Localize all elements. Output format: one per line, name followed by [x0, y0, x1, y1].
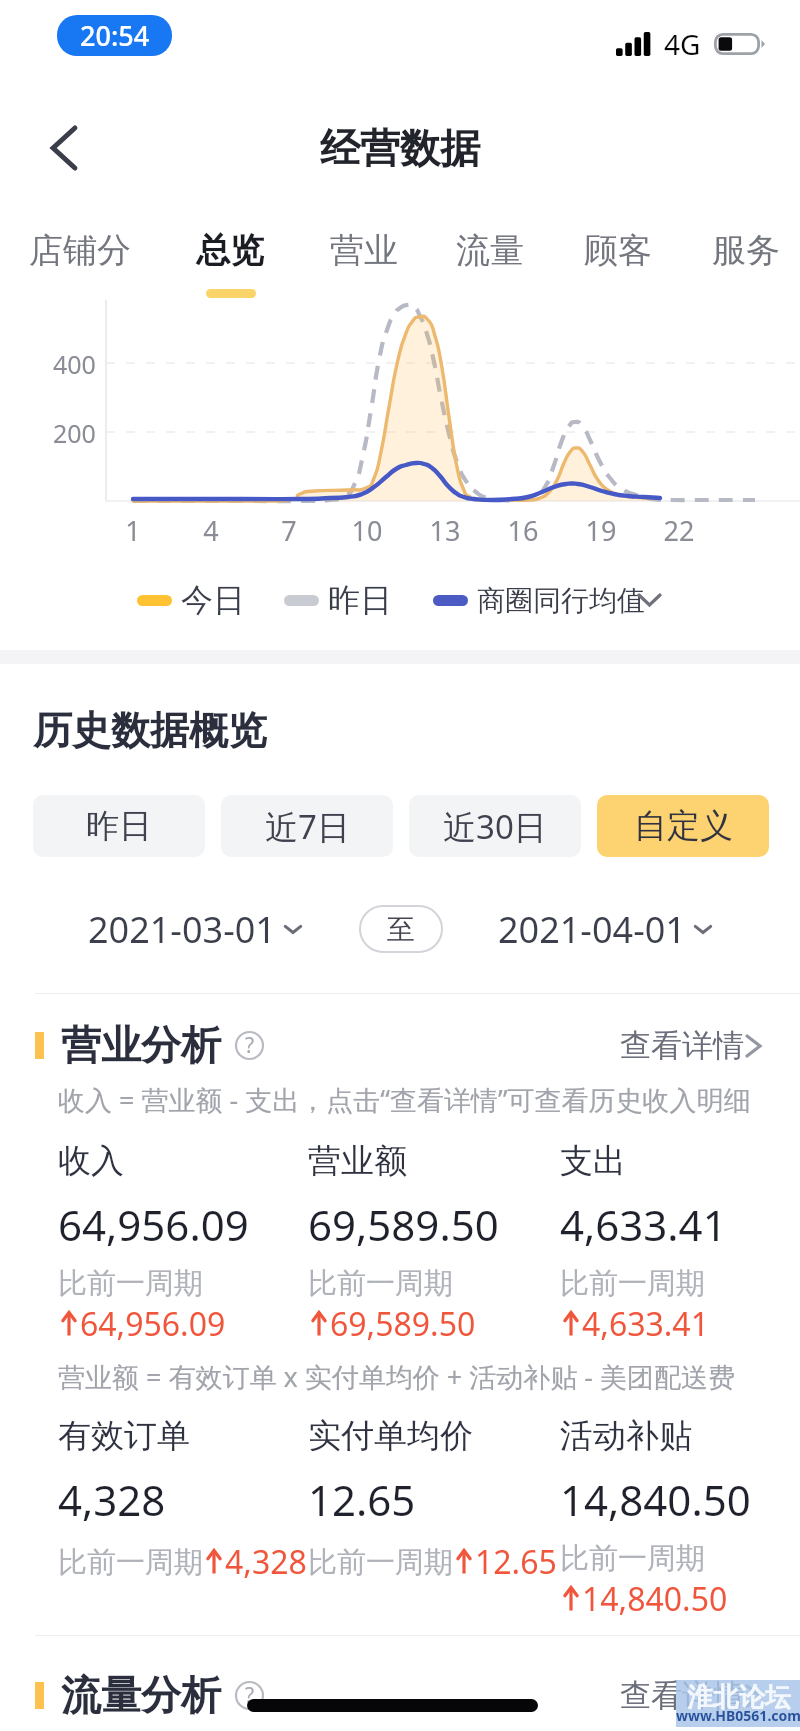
- staticText: 比前一周期: [308, 1544, 453, 1581]
- staticText: 14,840.50: [582, 1577, 728, 1621]
- staticText: 收入 = 营业额 - 支出，点击“查看详情”可查看历史收入明细: [58, 1081, 751, 1118]
- staticText: 4,328: [225, 1540, 307, 1584]
- staticText: 64,956.09: [80, 1302, 226, 1346]
- staticText: 查看详情: [620, 1676, 744, 1715]
- staticText: 4,328: [58, 1471, 166, 1528]
- staticText: 4,633.41: [582, 1302, 709, 1346]
- staticText: 支出: [560, 1140, 626, 1182]
- staticText: 4: [193, 512, 229, 549]
- staticText: 收入: [58, 1140, 124, 1182]
- staticText: 比前一周期: [58, 1265, 203, 1302]
- staticText: www.HB0561.com: [676, 1706, 800, 1725]
- staticText: 12.65: [308, 1471, 416, 1528]
- staticText: 近7日: [265, 804, 350, 849]
- staticText: 营业额 = 有效订单 x 实付单均价 + 活动补贴 - 美团配送费: [58, 1358, 736, 1395]
- button[interactable]: 昨日: [284, 550, 392, 650]
- staticText: 昨日: [328, 580, 392, 620]
- staticText: 13: [427, 512, 463, 549]
- staticText: 16: [505, 512, 541, 549]
- staticText: 商圈同行均值: [477, 583, 645, 618]
- staticText: 昨日: [86, 805, 152, 847]
- staticText: 近30日: [443, 804, 547, 849]
- button[interactable]: 近7日: [221, 795, 393, 857]
- staticText: 2021-04-01: [498, 905, 686, 954]
- staticText: 14,840.50: [560, 1471, 751, 1528]
- staticText: 69,589.50: [330, 1302, 476, 1346]
- button[interactable]: 总览: [155, 200, 305, 272]
- button[interactable]: 流量: [415, 200, 565, 272]
- staticText: 服务: [712, 229, 780, 272]
- staticText: 营业: [330, 229, 398, 272]
- staticText: 营业额: [308, 1140, 407, 1182]
- staticText: 200: [53, 416, 96, 450]
- staticText: 淮北论坛: [687, 1681, 791, 1714]
- staticText: 实付单均价: [308, 1415, 473, 1457]
- staticText: 4,633.41: [560, 1196, 727, 1253]
- staticText: 64,956.09: [58, 1196, 249, 1253]
- staticText: 12.65: [475, 1540, 557, 1584]
- staticText: 4G: [664, 25, 701, 63]
- button[interactable]: Help: [234, 1680, 265, 1711]
- button[interactable]: 2021-03-01: [33, 899, 359, 959]
- button[interactable]: 营业: [289, 200, 439, 272]
- staticText: 流量: [456, 229, 524, 272]
- button[interactable]: 服务: [671, 200, 800, 272]
- staticText: ?: [245, 1681, 255, 1710]
- button[interactable]: 查看详情: [620, 1676, 762, 1715]
- staticText: 经营数据: [320, 123, 480, 173]
- staticText: 历史数据概览: [33, 706, 267, 755]
- button[interactable]: 昨日: [33, 795, 205, 857]
- staticText: 10: [349, 512, 385, 549]
- button[interactable]: 顾客: [543, 200, 693, 272]
- button[interactable]: 店铺分: [5, 200, 155, 272]
- staticText: 店铺分: [29, 229, 131, 272]
- button[interactable]: 自定义: [597, 795, 769, 857]
- staticText: 活动补贴: [560, 1415, 692, 1457]
- button[interactable]: 今日: [137, 550, 245, 650]
- staticText: 1: [115, 512, 151, 549]
- staticText: 比前一周期: [58, 1544, 203, 1581]
- button[interactable]: 近30日: [409, 795, 581, 857]
- staticText: ?: [245, 1031, 255, 1060]
- staticText: 2021-03-01: [88, 905, 276, 954]
- button[interactable]: 查看详情: [620, 1026, 762, 1065]
- staticText: 顾客: [584, 229, 652, 272]
- staticText: 20:54: [80, 17, 150, 54]
- button[interactable]: Help: [234, 1030, 265, 1061]
- staticText: 69,589.50: [308, 1196, 499, 1253]
- staticText: 22: [661, 512, 697, 549]
- staticText: 比前一周期: [308, 1265, 453, 1302]
- staticText: 查看详情: [620, 1026, 744, 1065]
- staticText: 比前一周期: [560, 1540, 705, 1577]
- staticText: 自定义: [634, 805, 733, 847]
- staticText: 400: [53, 347, 96, 381]
- staticText: 比前一周期: [560, 1265, 705, 1302]
- button[interactable]: 2021-04-01: [443, 899, 769, 959]
- staticText: 今日: [181, 580, 245, 620]
- staticText: 总览: [196, 229, 264, 272]
- staticText: 至: [387, 912, 415, 947]
- staticText: 19: [583, 512, 619, 549]
- staticText: 7: [271, 512, 307, 549]
- button[interactable]: 商圈同行均值: [433, 550, 645, 650]
- button[interactable]: Back: [28, 112, 100, 184]
- button[interactable]: Expand legend: [632, 550, 666, 650]
- staticText: 有效订单: [58, 1415, 190, 1457]
- staticText: 营业分析: [61, 1020, 221, 1070]
- staticText: 流量分析: [61, 1670, 221, 1720]
